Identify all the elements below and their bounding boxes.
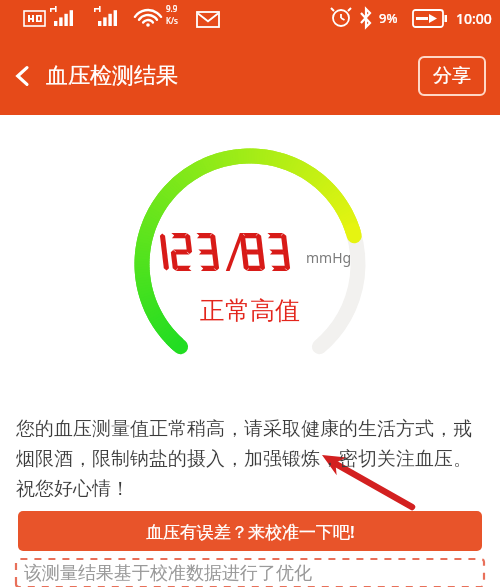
staticText: mmHg: [306, 248, 352, 267]
staticText: 该测量结果基于校准数据进行了优化: [24, 562, 312, 585]
staticText: 您的血压测量值正常稍高，请采取健康的生活方式，戒烟限酒，限制钠盐的摄入，加强锻炼…: [16, 417, 484, 501]
staticText: 9%: [379, 9, 398, 27]
staticText: 血压检测结果: [46, 62, 178, 90]
staticText: 正常高值: [200, 295, 300, 326]
button[interactable]: Back: [0, 53, 46, 99]
staticText: 9.9: [166, 3, 178, 14]
staticText: K/s: [166, 15, 178, 26]
staticText: 分享: [433, 64, 471, 88]
button[interactable]: 分享: [418, 56, 486, 96]
staticText: 血压有误差？来校准一下吧!: [146, 520, 355, 543]
staticText: 10:00: [456, 9, 492, 28]
button[interactable]: 血压有误差？来校准一下吧!: [18, 511, 482, 551]
